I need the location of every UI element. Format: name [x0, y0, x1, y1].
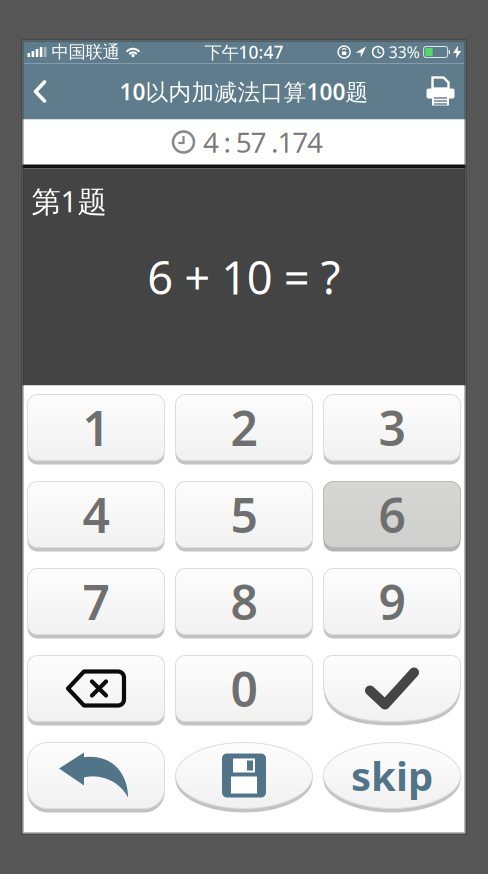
button[interactable]: 3 — [323, 394, 460, 464]
staticText: 6 + 10 = ? — [147, 247, 341, 307]
staticText: 33% — [389, 41, 420, 63]
staticText: 9 — [378, 570, 405, 633]
staticText: 5 — [230, 483, 257, 546]
button[interactable]: Delete — [27, 655, 164, 725]
button[interactable]: 1 — [27, 394, 164, 464]
staticText: 4 — [82, 483, 109, 546]
button[interactable]: 8 — [175, 568, 312, 638]
staticText: 中国联通 — [51, 41, 119, 63]
staticText: 0 — [230, 657, 257, 720]
button[interactable]: Undo — [27, 742, 164, 812]
button[interactable]: 9 — [323, 568, 460, 638]
staticText: 3 — [378, 396, 405, 459]
staticText: skip — [351, 749, 433, 802]
staticText: 7 — [82, 570, 109, 633]
button[interactable]: 0 — [175, 655, 312, 725]
button[interactable]: Back — [22, 80, 55, 103]
staticText: 1 — [82, 396, 109, 459]
button[interactable]: 2 — [175, 394, 312, 464]
button[interactable]: Print — [426, 77, 465, 105]
button[interactable]: Save — [175, 742, 312, 812]
staticText: 下午10:47 — [204, 40, 283, 63]
button[interactable]: 5 — [175, 481, 312, 551]
button[interactable]: 4 — [27, 481, 164, 551]
staticText: 第1题 — [31, 181, 106, 220]
button[interactable]: 7 — [27, 568, 164, 638]
staticText: 4 : 57 .174 — [203, 123, 323, 161]
staticText: 10以内加减法口算100题 — [119, 76, 368, 106]
button[interactable]: Submit answer — [323, 655, 460, 725]
staticText: 2 — [230, 396, 257, 459]
staticText: 6 — [378, 483, 405, 546]
button[interactable]: 6 — [323, 481, 460, 551]
button[interactable]: Skip — [323, 742, 460, 812]
staticText: 8 — [230, 570, 257, 633]
